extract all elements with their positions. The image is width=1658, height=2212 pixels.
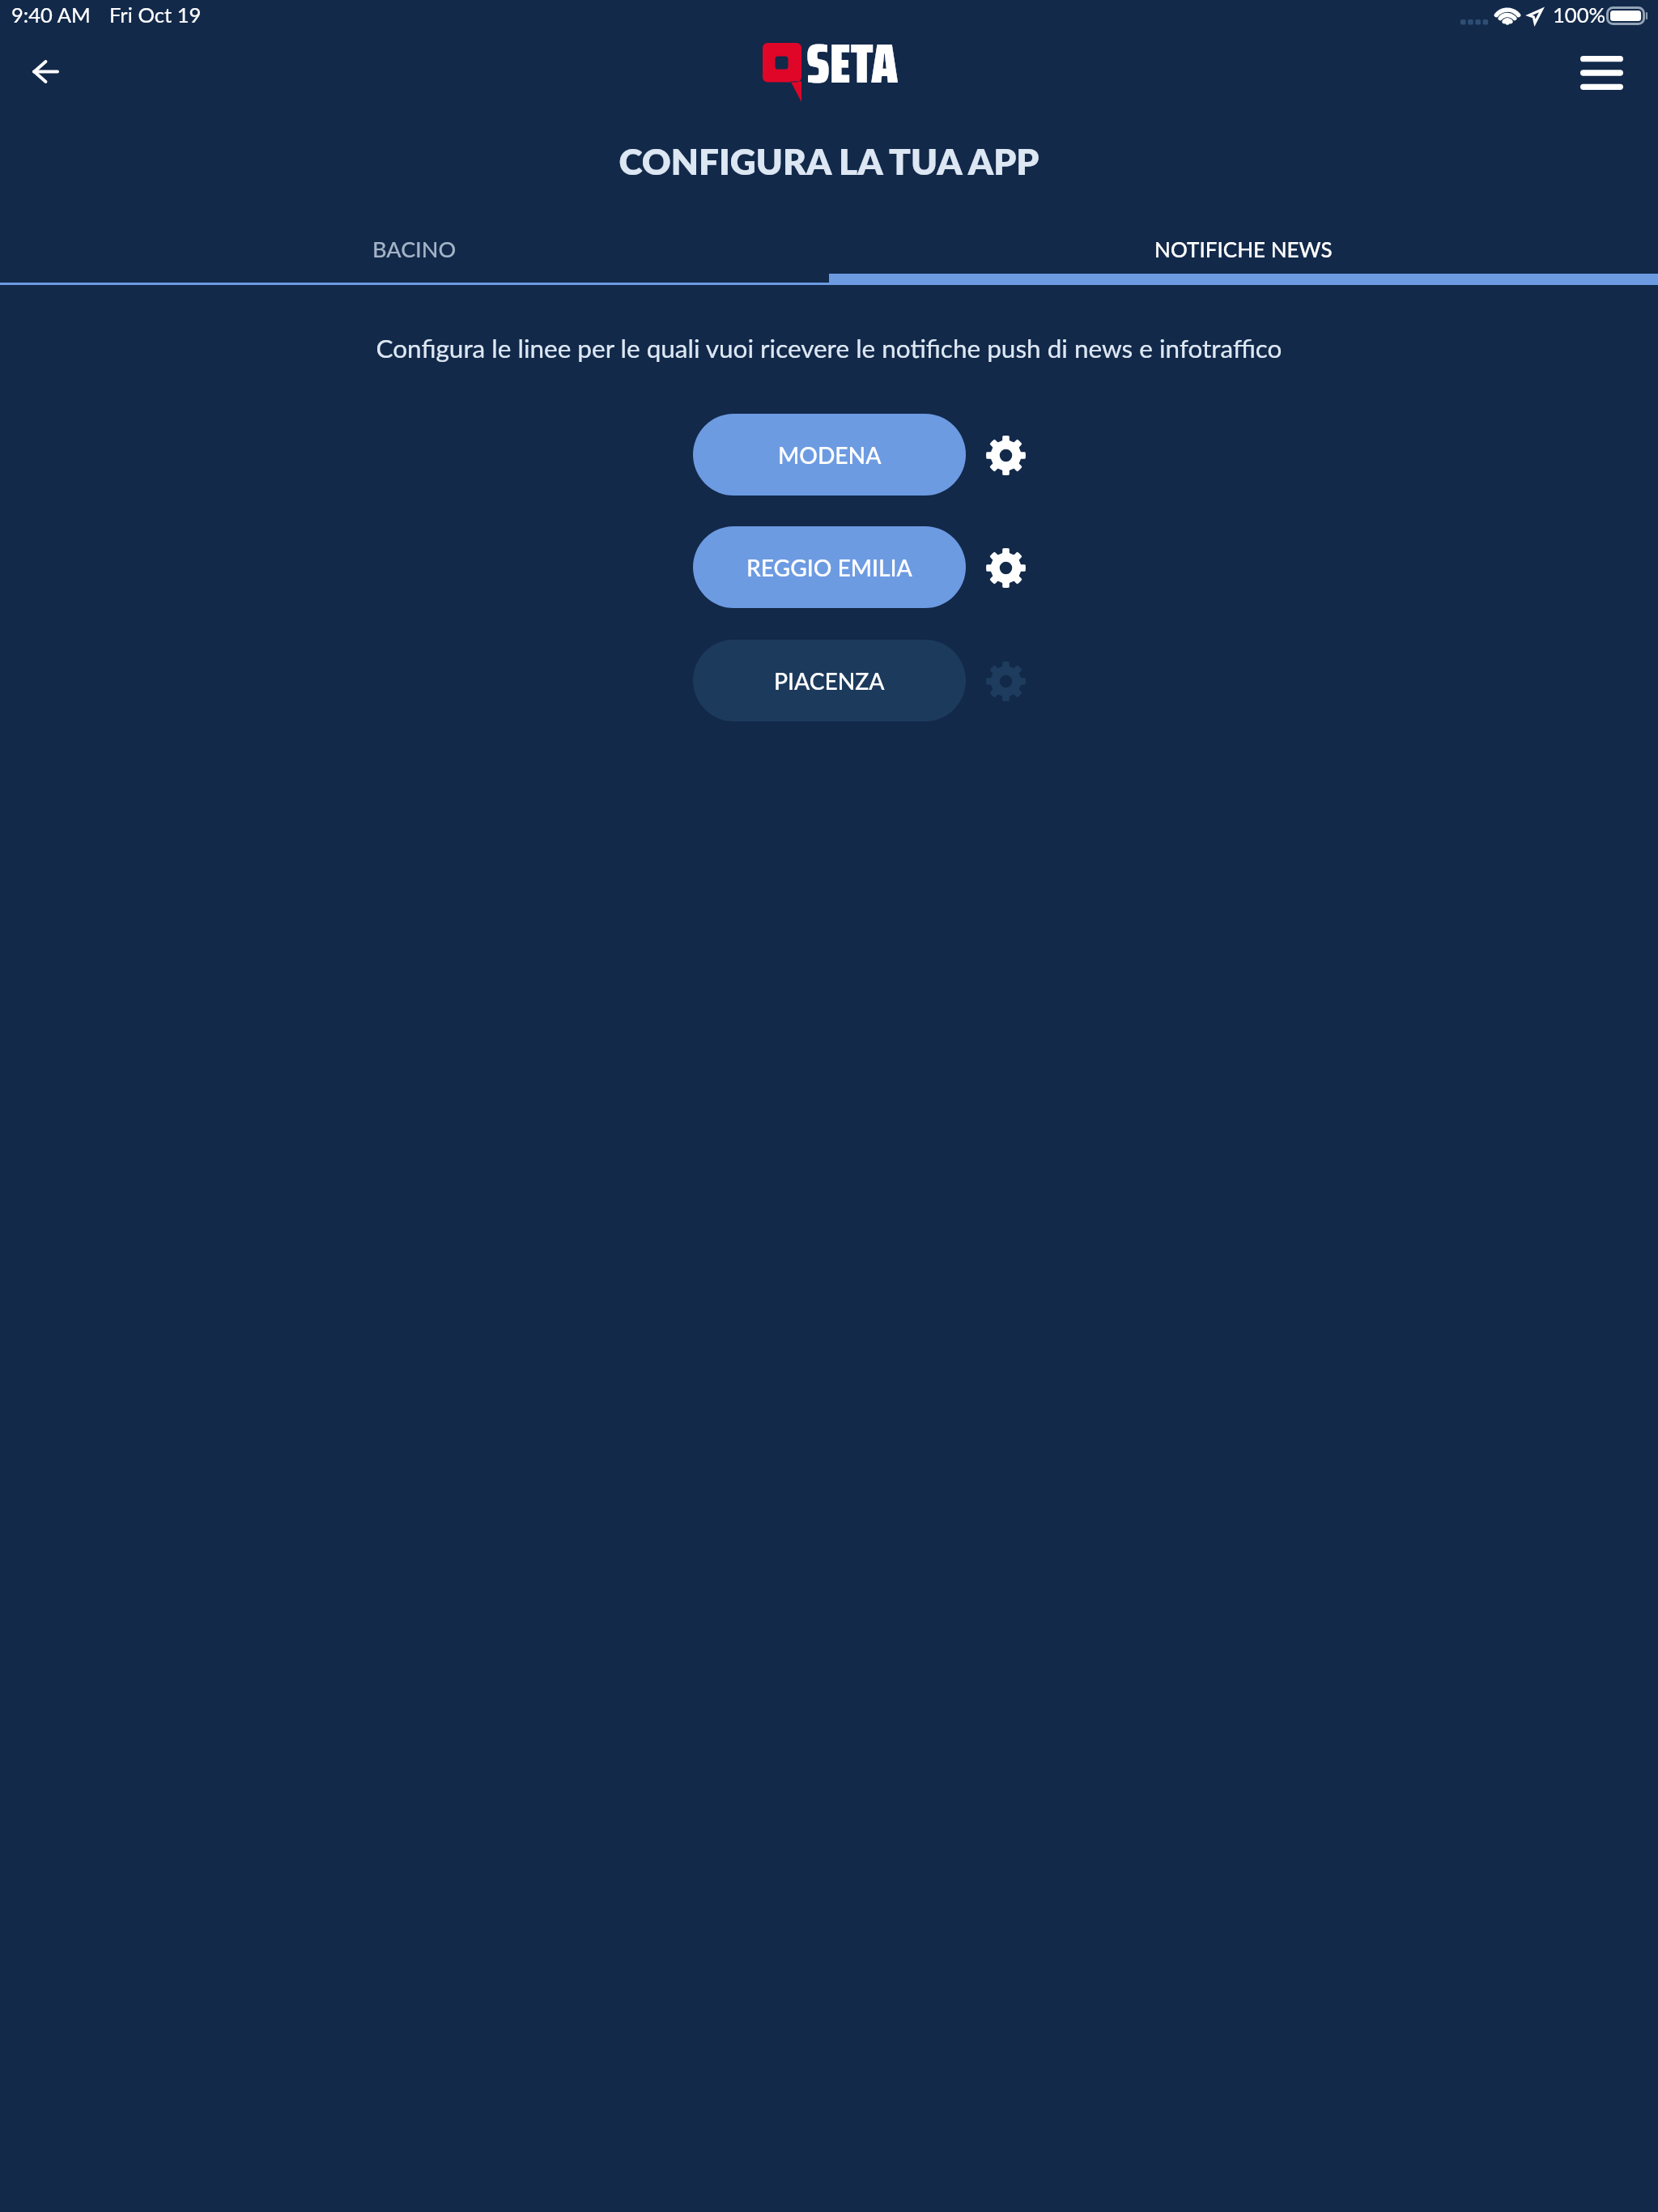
staticText: Fri Oct 19: [109, 2, 202, 28]
staticText: REGGIO EMILIA: [746, 554, 912, 581]
button[interactable]: Back: [13, 39, 78, 104]
staticText: CONFIGURA LA TUA APP: [0, 139, 1658, 182]
staticText: 100%: [1553, 2, 1606, 28]
staticText: Configura le linee per le quali vuoi ric…: [0, 333, 1658, 364]
staticText: MODENA: [778, 441, 882, 469]
button[interactable]: PIACENZA: [693, 640, 966, 721]
staticText: NOTIFICHE NEWS: [1154, 236, 1333, 262]
staticText: PIACENZA: [774, 667, 885, 695]
button[interactable]: MODENA: [693, 414, 966, 496]
staticText: SETA: [806, 20, 899, 107]
button[interactable]: NOTIFICHE NEWS: [829, 230, 1658, 267]
staticText: BACINO: [372, 236, 457, 262]
button[interactable]: BACINO: [0, 230, 829, 267]
button[interactable]: Impostazioni REGGIO EMILIA: [983, 545, 1028, 590]
button[interactable]: Menu: [1562, 39, 1640, 107]
button[interactable]: REGGIO EMILIA: [693, 526, 966, 608]
button[interactable]: Impostazioni PIACENZA: [983, 658, 1028, 704]
button[interactable]: Impostazioni MODENA: [983, 432, 1028, 478]
staticText: 9:40 AM: [11, 2, 91, 28]
